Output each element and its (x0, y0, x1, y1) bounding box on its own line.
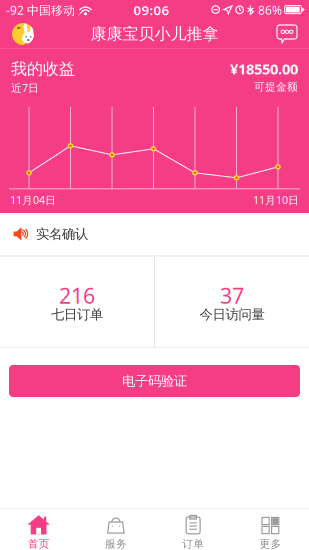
staticText: 康康宝贝小儿推拿 (90, 24, 218, 44)
button[interactable]: 37 (155, 257, 309, 347)
staticText: 11月04日 (10, 193, 56, 207)
button[interactable]: 216 (0, 257, 154, 347)
staticText: 七日订单 (51, 306, 103, 323)
button[interactable]: 个人中心 (0, 20, 46, 48)
staticText: ¥18550.00 (230, 59, 298, 78)
button[interactable]: 实名确认 (0, 213, 309, 255)
staticText: 216 (59, 281, 95, 310)
staticText: 可提金额 (254, 80, 298, 94)
staticText: 服务 (105, 537, 127, 550)
button[interactable]: 消息 (265, 20, 309, 48)
staticText: 首页 (28, 537, 50, 550)
staticText: 今日访问量 (199, 306, 264, 323)
button[interactable]: 首页 (0, 509, 77, 550)
staticText: 09:06 (133, 1, 169, 19)
staticText: -92 中国移动 (6, 2, 75, 18)
staticText: 11月10日 (253, 193, 299, 207)
staticText: 37 (220, 281, 244, 310)
button[interactable]: 服务 (77, 509, 154, 550)
staticText: 订单 (182, 537, 204, 550)
button[interactable]: 电子码验证 (9, 365, 300, 397)
button[interactable]: 订单 (154, 509, 232, 550)
staticText: 86% (258, 2, 282, 18)
staticText: 近7日 (11, 81, 39, 95)
staticText: 更多 (259, 537, 281, 550)
staticText: 我的收益 (11, 59, 75, 79)
staticText: 实名确认 (36, 226, 88, 242)
button[interactable]: 更多 (232, 509, 309, 550)
staticText: 电子码验证 (122, 373, 187, 389)
